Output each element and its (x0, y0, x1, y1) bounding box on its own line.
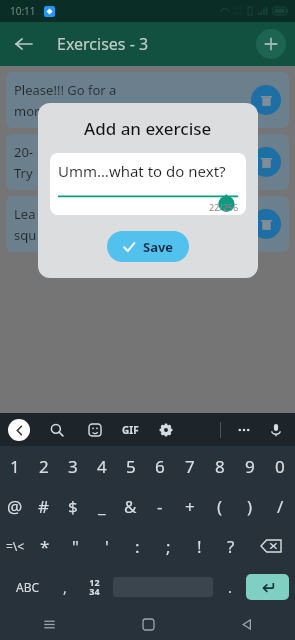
button[interactable]: @ (0, 486, 29, 526)
staticText: 3 (68, 455, 78, 478)
button[interactable]: 4 (87, 446, 116, 486)
staticText: - (157, 495, 163, 518)
staticText: GIF (122, 423, 139, 437)
button[interactable]: ( (205, 486, 235, 526)
staticText: ( (217, 495, 223, 518)
button[interactable]: + (175, 486, 205, 526)
button[interactable]: $ (58, 486, 87, 526)
staticText: : (135, 535, 140, 558)
button[interactable]: Backspace (246, 526, 295, 566)
button[interactable]: ? (215, 526, 246, 566)
button[interactable]: - (145, 486, 175, 526)
staticText: & (124, 495, 137, 518)
button[interactable]: Delete (251, 209, 281, 239)
button[interactable]: 6 (145, 446, 175, 486)
staticText: 5 (126, 455, 136, 478)
button[interactable]: , (51, 566, 79, 608)
button[interactable]: Enter (246, 574, 289, 600)
button[interactable]: Numbers (79, 566, 110, 608)
staticText: Add an exercise (84, 117, 212, 140)
staticText: ) (247, 495, 253, 518)
staticText: 2 (39, 455, 49, 478)
staticText: 20- (14, 143, 34, 161)
staticText: Umm…what to do next? (58, 161, 226, 181)
button[interactable]: _ (87, 486, 116, 526)
button[interactable]: ' (91, 526, 122, 566)
button[interactable]: Settings (155, 419, 177, 441)
staticText: 12 34 (89, 576, 100, 598)
button[interactable]: ! (184, 526, 215, 566)
staticText: 10:11 (10, 4, 36, 18)
staticText: =\< (6, 538, 25, 554)
staticText: * (40, 535, 50, 558)
staticText: , (63, 578, 67, 597)
staticText: 1 (10, 455, 20, 478)
button[interactable]: 7 (175, 446, 205, 486)
staticText: ? (227, 535, 235, 558)
button[interactable]: 8 (205, 446, 235, 486)
button[interactable]: Recents (0, 608, 99, 640)
button[interactable]: Home (99, 608, 197, 640)
button[interactable]: " (60, 526, 91, 566)
staticText: 7 (185, 455, 195, 478)
staticText: ; (166, 535, 171, 558)
staticText: ' (105, 535, 109, 558)
button[interactable]: ABC (4, 566, 51, 608)
staticText: Try (14, 164, 33, 182)
button[interactable]: 2 (29, 446, 58, 486)
button[interactable]: Please!!! Go for a (6, 72, 289, 128)
staticText: 8 (215, 455, 225, 478)
staticText: 22/256 (209, 201, 239, 213)
staticText: + (185, 495, 195, 518)
button[interactable]: Voice input (265, 419, 287, 441)
staticText: # (38, 495, 49, 518)
button[interactable]: . (216, 566, 244, 608)
button[interactable]: Umm…what to do next? (50, 153, 246, 215)
button[interactable]: Delete (251, 85, 281, 115)
button[interactable]: # (29, 486, 58, 526)
button[interactable]: ; (153, 526, 184, 566)
button[interactable]: GIF (122, 419, 139, 441)
staticText: 0 (275, 455, 285, 478)
staticText: Please!!! Go for a (14, 81, 117, 99)
button[interactable]: 5 (116, 446, 145, 486)
staticText: @ (7, 495, 23, 518)
staticText: Exercises - 3 (57, 33, 149, 55)
staticText: 6 (155, 455, 165, 478)
button[interactable]: More options (233, 419, 255, 441)
button[interactable]: & (116, 486, 145, 526)
button[interactable]: Back (6, 27, 40, 61)
button[interactable]: / (265, 486, 295, 526)
staticText: / (277, 495, 284, 518)
button[interactable]: Search (46, 419, 68, 441)
button[interactable]: 1 (0, 446, 29, 486)
button[interactable]: ) (235, 486, 265, 526)
button[interactable]: 9 (235, 446, 265, 486)
button[interactable]: Stickers (84, 419, 106, 441)
button[interactable]: Delete (251, 147, 281, 177)
staticText: Save (143, 238, 174, 256)
staticText: _ (98, 495, 106, 518)
button[interactable]: 3 (58, 446, 87, 486)
button[interactable]: Lea (6, 196, 289, 252)
staticText: 9 (245, 455, 255, 478)
button[interactable]: : (122, 526, 153, 566)
staticText: squ (14, 226, 37, 244)
button[interactable]: =\< (0, 526, 30, 566)
button[interactable]: * (30, 526, 60, 566)
button[interactable]: Save (107, 231, 189, 262)
button[interactable]: Add (256, 29, 286, 59)
staticText: . (228, 578, 232, 597)
staticText: 4 (97, 455, 107, 478)
button[interactable]: Back (197, 608, 295, 640)
staticText: mor (14, 102, 40, 120)
staticText: ! (197, 535, 202, 558)
staticText: ABC (16, 579, 40, 595)
staticText: $ (68, 495, 78, 518)
button[interactable]: 20- (6, 134, 289, 190)
button[interactable]: Close toolbar (8, 419, 30, 441)
button[interactable]: 0 (265, 446, 295, 486)
staticText: Lea (14, 205, 36, 223)
